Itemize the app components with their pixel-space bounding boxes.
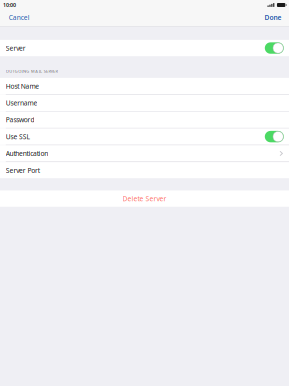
staticText: Authentication [6,149,48,158]
button[interactable]: Cancel [0,10,37,25]
staticText: Password [6,115,34,124]
button[interactable]: Username [0,95,289,111]
staticText: 10:00 [3,1,16,9]
button[interactable]: Delete Server [0,190,289,207]
button[interactable]: Use SSL [0,128,289,145]
staticText: Server Port [6,166,40,175]
staticText: Cancel [9,13,30,22]
button[interactable]: Server [0,40,289,56]
button[interactable]: Authentication [0,145,289,162]
button[interactable]: Host Name [0,78,289,94]
staticText: Use SSL [6,132,30,141]
staticText: Done [264,13,281,22]
staticText: Delete Server [122,194,166,203]
button[interactable]: Done [257,10,289,25]
button[interactable]: Server Port [0,162,289,178]
staticText: Host Name [6,82,39,90]
staticText: Server [6,44,26,52]
staticText: OUTGOING MAIL SERVER [6,69,57,74]
button[interactable]: Password [0,112,289,128]
staticText: Username [6,98,37,107]
